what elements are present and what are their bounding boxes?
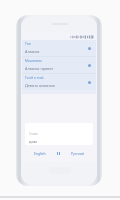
staticText: То об о этой (25, 76, 44, 80)
other: Open (88, 81, 91, 84)
button[interactable]: English (33, 151, 47, 156)
staticText: дом (29, 139, 37, 144)
button[interactable]: Тип (22, 40, 96, 56)
button[interactable]: Swap languages (56, 151, 61, 156)
other: Open (88, 47, 91, 50)
staticText: Русский (71, 151, 84, 156)
staticText: Слово (29, 132, 38, 136)
staticText: Мошенник (25, 59, 42, 63)
button[interactable]: Мошенник (22, 57, 96, 73)
staticText: Девять алмазов (25, 83, 55, 88)
other: Open (88, 64, 91, 67)
staticText: Тип (25, 42, 31, 46)
staticText: Алмазы (25, 49, 40, 54)
staticText: English (34, 151, 46, 156)
button[interactable]: То об о этой (22, 74, 96, 90)
staticText: Алмазы привет (25, 66, 54, 71)
button[interactable]: Русский (70, 151, 85, 156)
